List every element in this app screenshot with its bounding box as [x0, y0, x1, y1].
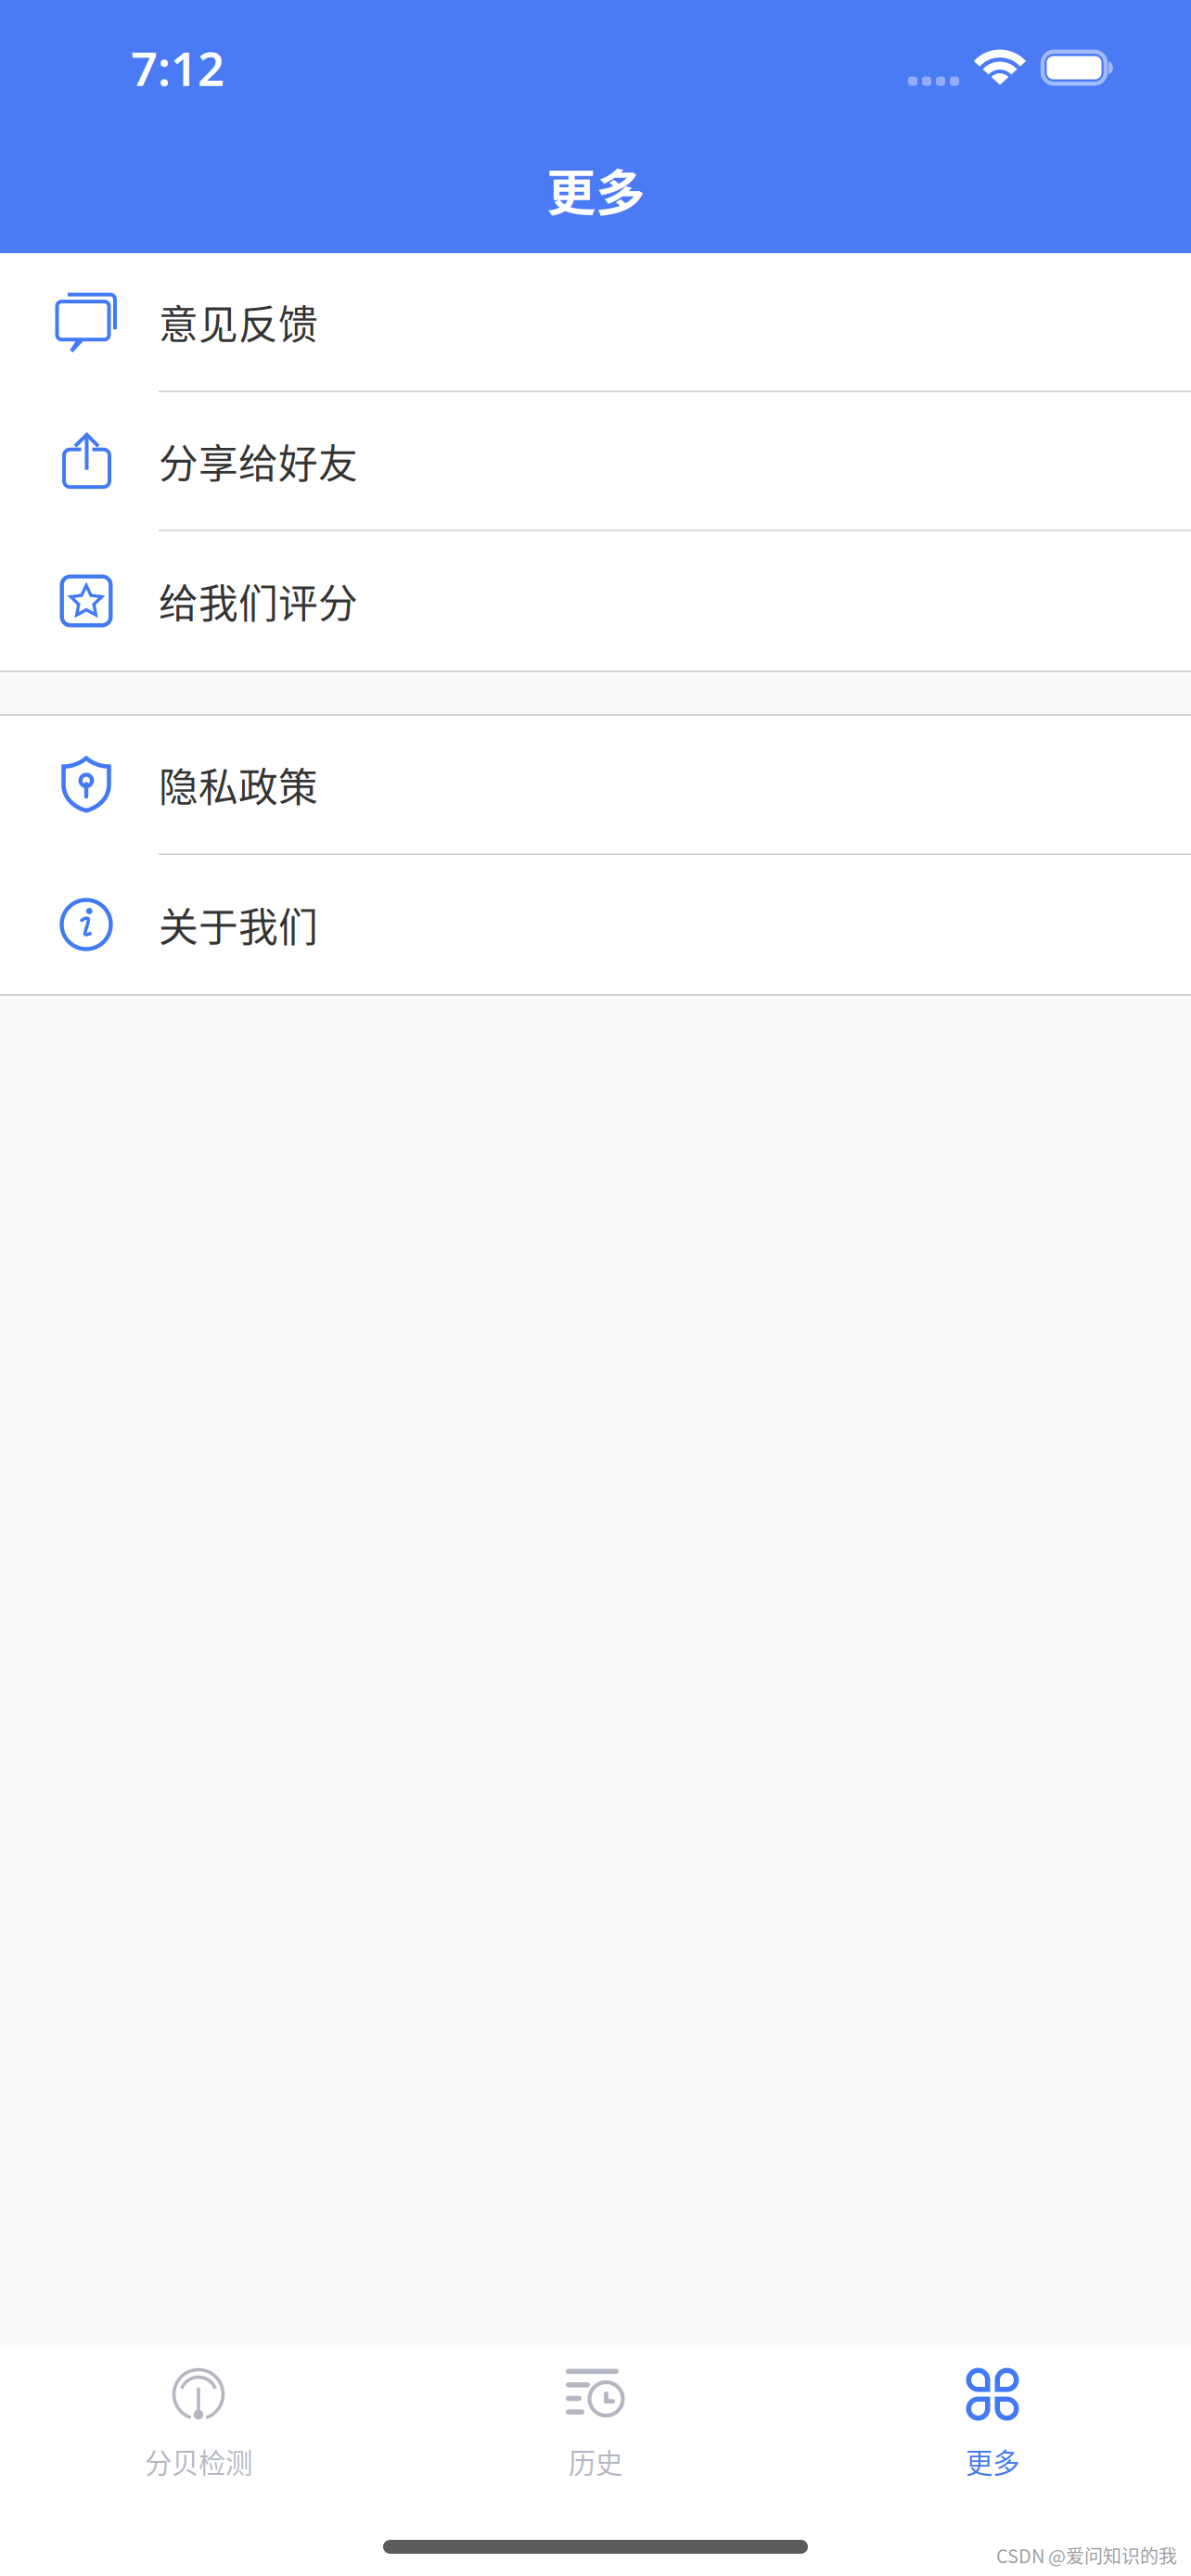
staticText: 隐私政策: [159, 756, 318, 813]
staticText: 历史: [569, 2442, 622, 2481]
staticText: 分享给好友: [159, 432, 358, 490]
staticText: 关于我们: [159, 896, 318, 953]
staticText: 7:12: [131, 37, 224, 99]
staticText: 更多: [966, 2442, 1019, 2481]
staticText: 意见反馈: [159, 293, 318, 351]
button[interactable]: 更多: [794, 2345, 1191, 2481]
staticText: 分贝检测: [145, 2442, 252, 2481]
button[interactable]: 意见反馈: [0, 253, 1191, 392]
staticText: CSDN @爱问知识的我: [996, 2542, 1177, 2569]
button[interactable]: 历史: [397, 2345, 794, 2481]
button[interactable]: 分贝检测: [0, 2345, 397, 2481]
button[interactable]: 给我们评分: [0, 531, 1191, 670]
button[interactable]: 关于我们: [0, 855, 1191, 994]
button[interactable]: 分享给好友: [0, 392, 1191, 531]
staticText: 更多: [546, 154, 645, 225]
staticText: 给我们评分: [159, 572, 358, 630]
button[interactable]: 隐私政策: [0, 716, 1191, 855]
